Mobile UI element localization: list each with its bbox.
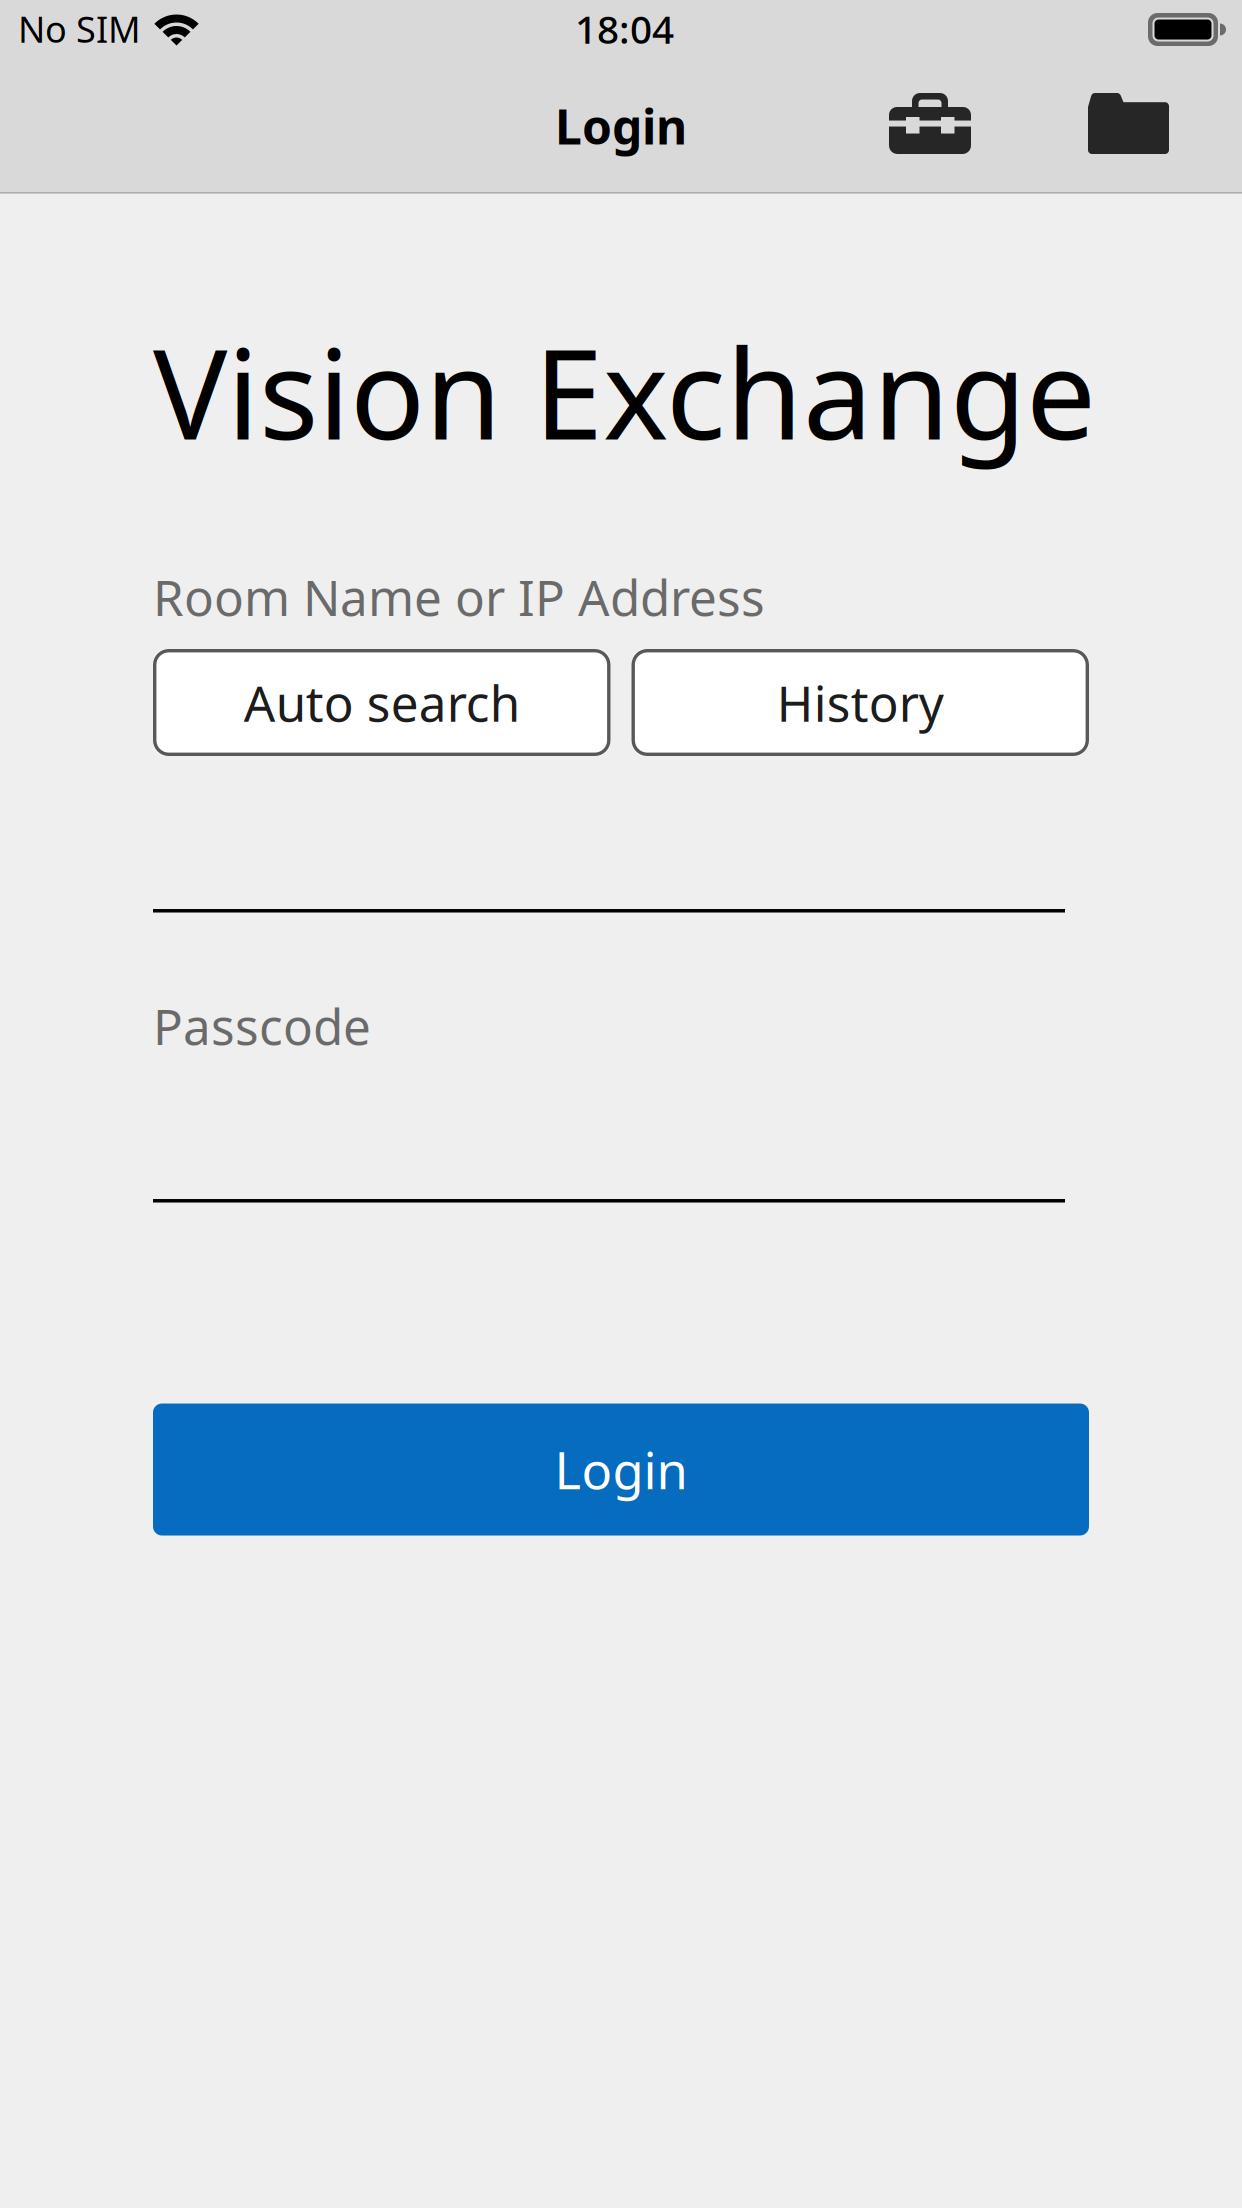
button[interactable]: Files [1062, 60, 1194, 187]
staticText: Auto search [244, 670, 520, 735]
staticText: Login [555, 94, 687, 158]
staticText: No SIM [18, 5, 141, 53]
staticText: Room Name or IP Address [153, 564, 765, 629]
button[interactable]: History [631, 649, 1089, 756]
staticText: Login [554, 1436, 687, 1503]
staticText: Passcode [153, 993, 371, 1058]
button[interactable]: Tools [864, 60, 996, 187]
staticText: History [777, 670, 944, 735]
button[interactable]: Auto search [153, 649, 610, 756]
staticText: Vision Exchange [153, 309, 1096, 474]
button[interactable]: Login [153, 1403, 1089, 1535]
staticText: 18:04 [575, 3, 674, 54]
